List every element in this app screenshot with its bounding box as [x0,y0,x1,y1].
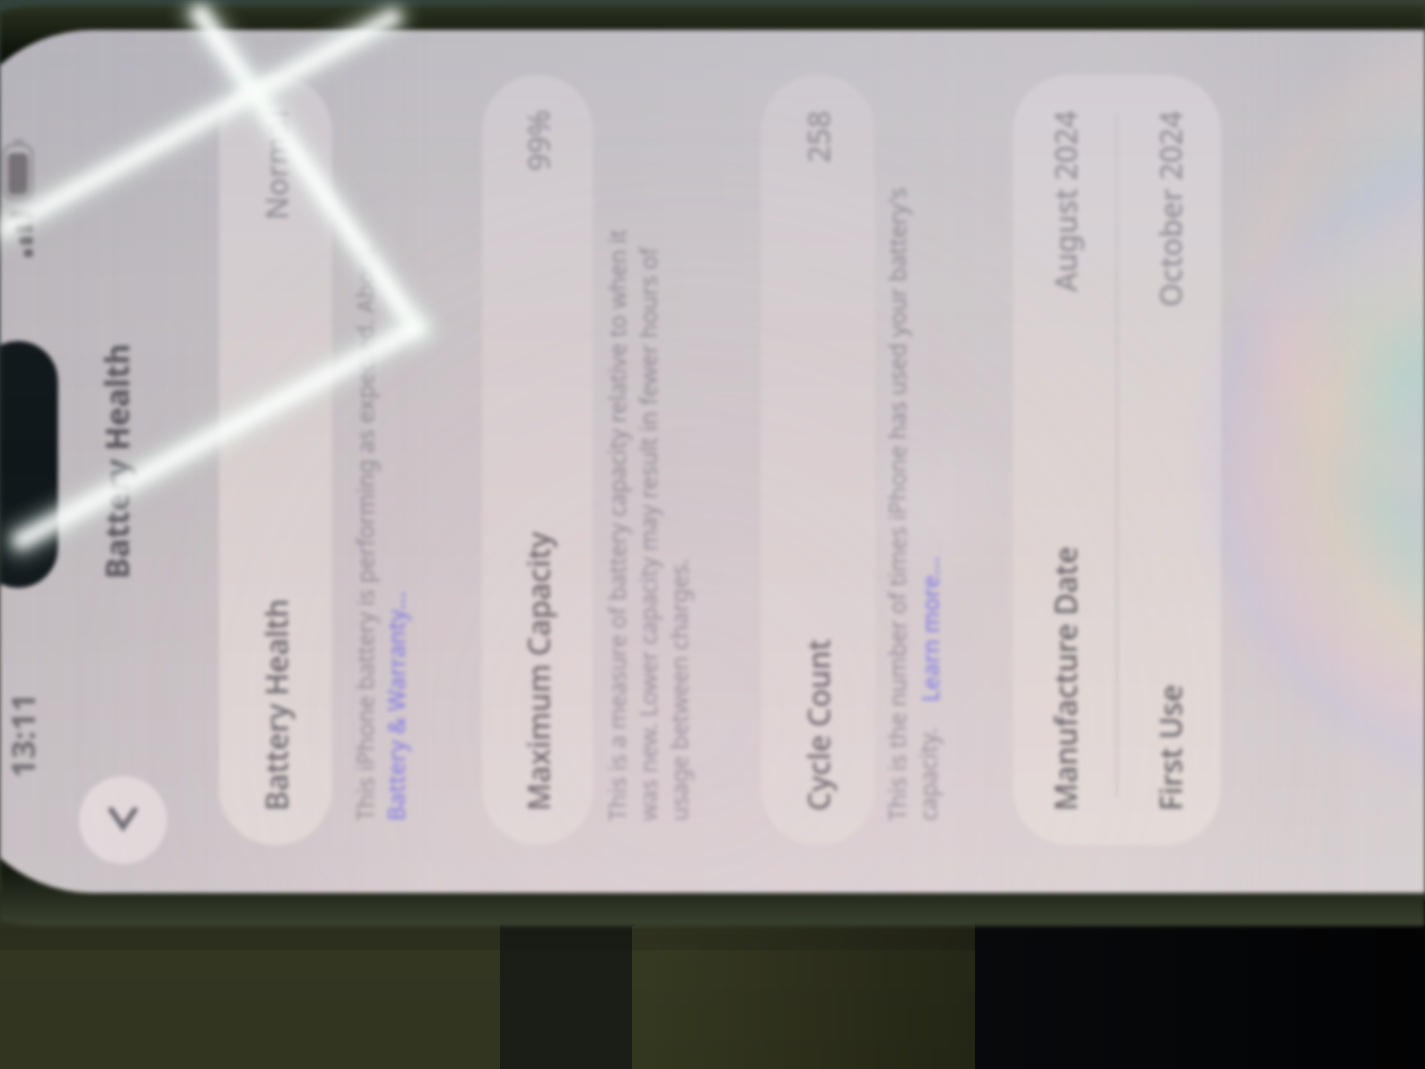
staticText: First Use [1149,684,1191,811]
staticText: Manufacture Date [1044,546,1086,811]
staticText: usage between charges. [663,558,694,821]
button[interactable]: Manufacture Date [1013,75,1116,845]
staticText: Cycle Count [797,638,839,811]
button[interactable]: First Use [1118,75,1221,845]
button[interactable]: Maximum Capacity [482,75,593,845]
button[interactable]: Battery Health [219,75,332,845]
staticText: August 2024 [1044,110,1086,292]
button[interactable]: Cycle Count [761,75,875,845]
button[interactable]: Back [79,776,167,864]
staticText: October 2024 [1149,110,1191,307]
staticText: was new. Lower capacity may result in fe… [632,247,663,821]
staticText: capacity. [912,721,943,821]
staticText: Battery Health [255,598,297,811]
staticText: Maximum Capacity [517,531,559,811]
staticText: 99% [517,110,559,171]
staticText: Battery & Warranty... [380,591,411,821]
staticText: Normal [255,110,297,220]
staticText: This iPhone battery is performing as exp… [349,247,380,821]
staticText: This is the number of times iPhone has u… [881,187,912,821]
staticText: This is a measure of battery capacity re… [601,229,632,821]
staticText: 13:11 [0,693,45,778]
staticText: 258 [797,110,839,163]
staticText: Battery Health [95,343,139,579]
staticText: Learn more... [914,556,945,702]
